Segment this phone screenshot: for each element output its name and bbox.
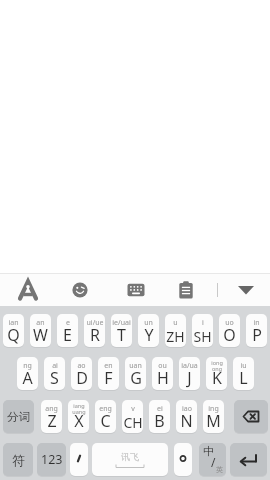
button[interactable]: e bbox=[57, 314, 78, 347]
button[interactable] bbox=[16, 277, 40, 301]
button[interactable]: 讯飞 bbox=[92, 443, 168, 476]
button[interactable]: iong ong bbox=[206, 357, 227, 390]
staticText: in bbox=[253, 318, 260, 328]
staticText: ui/ue bbox=[86, 318, 104, 328]
staticText: e bbox=[66, 318, 70, 328]
staticText: i bbox=[202, 318, 204, 328]
button[interactable]: ian bbox=[3, 314, 24, 347]
staticText: ao bbox=[77, 361, 86, 371]
staticText: R bbox=[90, 324, 100, 346]
button[interactable]: ao bbox=[71, 357, 92, 390]
staticText: B bbox=[154, 410, 165, 432]
button[interactable]: ui/ue bbox=[84, 314, 105, 347]
staticText: X bbox=[74, 410, 84, 432]
staticText: 符 bbox=[12, 452, 25, 468]
button[interactable] bbox=[234, 277, 258, 301]
staticText: ing bbox=[208, 404, 219, 414]
staticText: en bbox=[104, 361, 113, 371]
staticText: G bbox=[130, 367, 142, 389]
button[interactable] bbox=[174, 443, 192, 476]
button[interactable]: 中 bbox=[199, 443, 226, 476]
staticText: un bbox=[144, 318, 153, 328]
staticText: ou bbox=[158, 361, 167, 371]
staticText: Q bbox=[7, 324, 20, 346]
staticText: SH bbox=[193, 327, 212, 346]
staticText: A bbox=[22, 367, 33, 389]
staticText: 英 bbox=[216, 465, 223, 474]
staticText: Z bbox=[47, 410, 57, 432]
button[interactable]: eng bbox=[95, 400, 116, 433]
button[interactable]: un bbox=[138, 314, 159, 347]
staticText: 123 bbox=[41, 451, 63, 468]
staticText: an bbox=[36, 318, 45, 328]
staticText: F bbox=[104, 367, 113, 389]
staticText: W bbox=[33, 324, 48, 346]
staticText: ia/ua bbox=[181, 361, 198, 371]
button[interactable]: iao bbox=[176, 400, 197, 433]
staticText: J bbox=[187, 367, 192, 389]
button[interactable]: ai bbox=[44, 357, 65, 390]
button[interactable]: iang uang bbox=[68, 400, 89, 433]
button[interactable]: 123 bbox=[37, 443, 66, 476]
staticText: N bbox=[180, 410, 193, 432]
staticText: v bbox=[131, 404, 135, 414]
staticText: D bbox=[76, 367, 88, 389]
button[interactable]: ia/ua bbox=[179, 357, 200, 390]
staticText: P bbox=[252, 324, 262, 346]
staticText: ian bbox=[8, 318, 19, 328]
staticText: ang bbox=[45, 404, 58, 414]
staticText: O bbox=[223, 324, 236, 346]
staticText: ie/uai bbox=[112, 318, 131, 328]
button[interactable]: en bbox=[98, 357, 119, 390]
staticText: iong ong bbox=[211, 359, 223, 372]
button[interactable]: i bbox=[192, 314, 213, 347]
button[interactable]: ang bbox=[41, 400, 62, 433]
staticText: uo bbox=[225, 318, 234, 328]
button[interactable]: uo bbox=[219, 314, 240, 347]
staticText: ZH bbox=[166, 327, 185, 346]
button[interactable]: ng bbox=[17, 357, 38, 390]
staticText: iang uang bbox=[72, 402, 86, 415]
staticText: M bbox=[206, 410, 221, 432]
staticText: ei bbox=[157, 404, 163, 414]
staticText: K bbox=[212, 367, 222, 389]
button[interactable]: in bbox=[246, 314, 267, 347]
staticText: C bbox=[100, 410, 111, 432]
button[interactable]: uan bbox=[125, 357, 146, 390]
button[interactable] bbox=[174, 277, 198, 301]
button[interactable] bbox=[230, 443, 267, 476]
staticText: Y bbox=[144, 324, 154, 346]
staticText: S bbox=[50, 367, 59, 389]
staticText: L bbox=[239, 367, 248, 389]
staticText: CH bbox=[123, 413, 143, 432]
button[interactable]: ie/uai bbox=[111, 314, 132, 347]
button[interactable] bbox=[68, 277, 92, 301]
staticText: 中 bbox=[203, 444, 214, 458]
staticText: uan bbox=[129, 361, 142, 371]
button[interactable]: v bbox=[122, 400, 143, 433]
button[interactable] bbox=[70, 443, 88, 476]
staticText: ng bbox=[23, 361, 32, 371]
staticText: / bbox=[211, 454, 216, 470]
button[interactable]: iu bbox=[233, 357, 254, 390]
staticText: u bbox=[173, 318, 178, 328]
staticText: eng bbox=[99, 404, 112, 414]
button[interactable]: ou bbox=[152, 357, 173, 390]
button[interactable]: 分词 bbox=[3, 400, 34, 433]
button[interactable] bbox=[234, 400, 268, 433]
button[interactable]: 符 bbox=[3, 443, 33, 476]
staticText: T bbox=[117, 324, 126, 346]
button[interactable]: u bbox=[165, 314, 186, 347]
staticText: E bbox=[63, 324, 72, 346]
staticText: 分词 bbox=[7, 410, 30, 424]
staticText: iao bbox=[182, 404, 192, 414]
staticText: 讯飞 bbox=[121, 451, 139, 462]
staticText: iu bbox=[240, 361, 247, 371]
button[interactable]: ei bbox=[149, 400, 170, 433]
button[interactable]: ing bbox=[203, 400, 224, 433]
staticText: ai bbox=[52, 361, 58, 371]
button[interactable]: an bbox=[30, 314, 51, 347]
staticText: H bbox=[157, 367, 169, 389]
button[interactable] bbox=[124, 277, 148, 301]
